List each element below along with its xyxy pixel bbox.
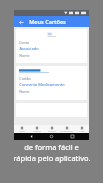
staticText: Início <box>19 130 25 133</box>
staticText: Associado <box>19 46 39 51</box>
button[interactable]: Recents <box>69 133 76 140</box>
staticText: de forma fácil e <box>24 142 79 152</box>
button[interactable]: Voltar <box>17 18 25 26</box>
button[interactable]: Back <box>28 133 35 140</box>
staticText: Cartões <box>33 130 41 133</box>
staticText: Meus Cartões <box>29 18 66 26</box>
button[interactable]: Home <box>48 133 55 140</box>
button[interactable]: Notificações <box>59 125 74 133</box>
button[interactable]: Extrato <box>44 125 59 133</box>
staticText: rápida pelo aplicativo. <box>13 153 91 163</box>
staticText: Cartão <box>19 76 31 81</box>
button[interactable]: Conta <box>16 29 87 63</box>
staticText: Nome <box>19 53 30 58</box>
button[interactable]: Início <box>14 125 29 133</box>
staticText: Extrato <box>48 130 56 133</box>
button[interactable]: Cartões <box>29 125 44 133</box>
staticText: Perfil <box>79 130 85 133</box>
button[interactable]: Cartão <box>16 66 87 100</box>
staticText: Convenio Medicamento <box>19 82 65 87</box>
staticText: Nome <box>19 89 30 94</box>
staticText: Notificações <box>60 130 73 133</box>
staticText: Conta <box>19 40 29 45</box>
button[interactable]: Perfil <box>74 125 89 133</box>
